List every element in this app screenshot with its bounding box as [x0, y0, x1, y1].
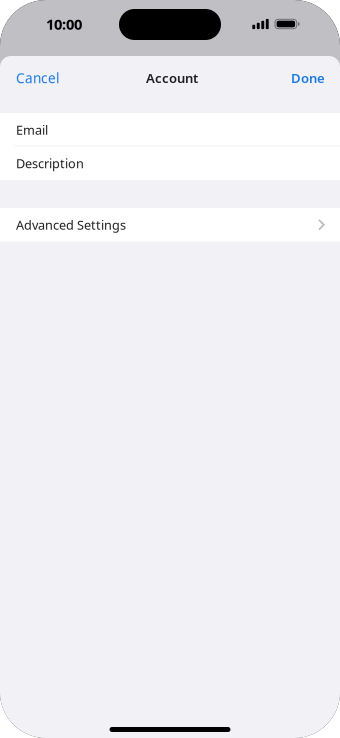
staticText: Account — [146, 69, 198, 87]
staticText: 10:00 — [46, 14, 82, 34]
button[interactable]: Description — [0, 146, 340, 180]
button[interactable]: Cancel — [0, 56, 70, 100]
staticText: Advanced Settings — [16, 216, 126, 233]
staticText: Cancel — [16, 69, 60, 87]
staticText: Email — [16, 121, 48, 138]
button[interactable]: Advanced Settings — [0, 208, 340, 241]
staticText: Description — [16, 155, 84, 172]
staticText: Done — [291, 69, 325, 87]
button[interactable]: Done — [281, 56, 340, 100]
button[interactable]: Email — [0, 113, 340, 146]
